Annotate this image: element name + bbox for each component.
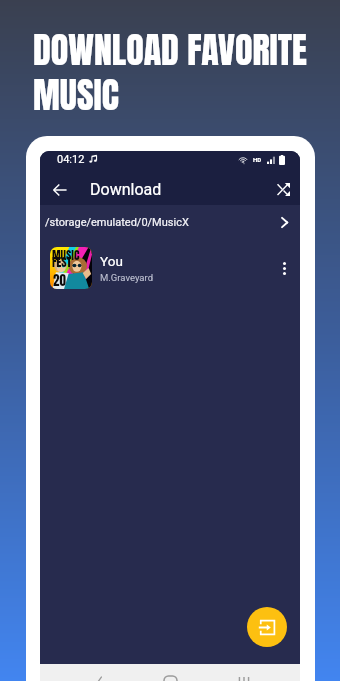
button[interactable]: MUSIC (40, 240, 300, 296)
staticText: HD (253, 156, 262, 163)
button[interactable]: Home (155, 664, 185, 681)
button[interactable]: Recent apps (229, 664, 259, 681)
staticText: MUSIC (52, 247, 80, 263)
button[interactable]: Import songs (247, 607, 287, 647)
button[interactable]: Back (46, 174, 74, 205)
staticText: 04:12 (57, 153, 85, 166)
staticText: 20 (53, 271, 66, 289)
staticText: /storage/emulated/0/MusicX (45, 216, 189, 229)
button[interactable]: Shuffle (269, 174, 297, 205)
button[interactable]: More options (274, 248, 294, 288)
staticText: Download (90, 180, 162, 199)
staticText: FEST (52, 253, 72, 270)
button[interactable]: Back (83, 664, 112, 681)
staticText: M.Graveyard (100, 272, 154, 283)
staticText: DOWNLOAD FAVORITE MUSIC (33, 23, 307, 122)
staticText: You (100, 253, 123, 269)
button[interactable]: /storage/emulated/0/MusicX (40, 205, 300, 240)
